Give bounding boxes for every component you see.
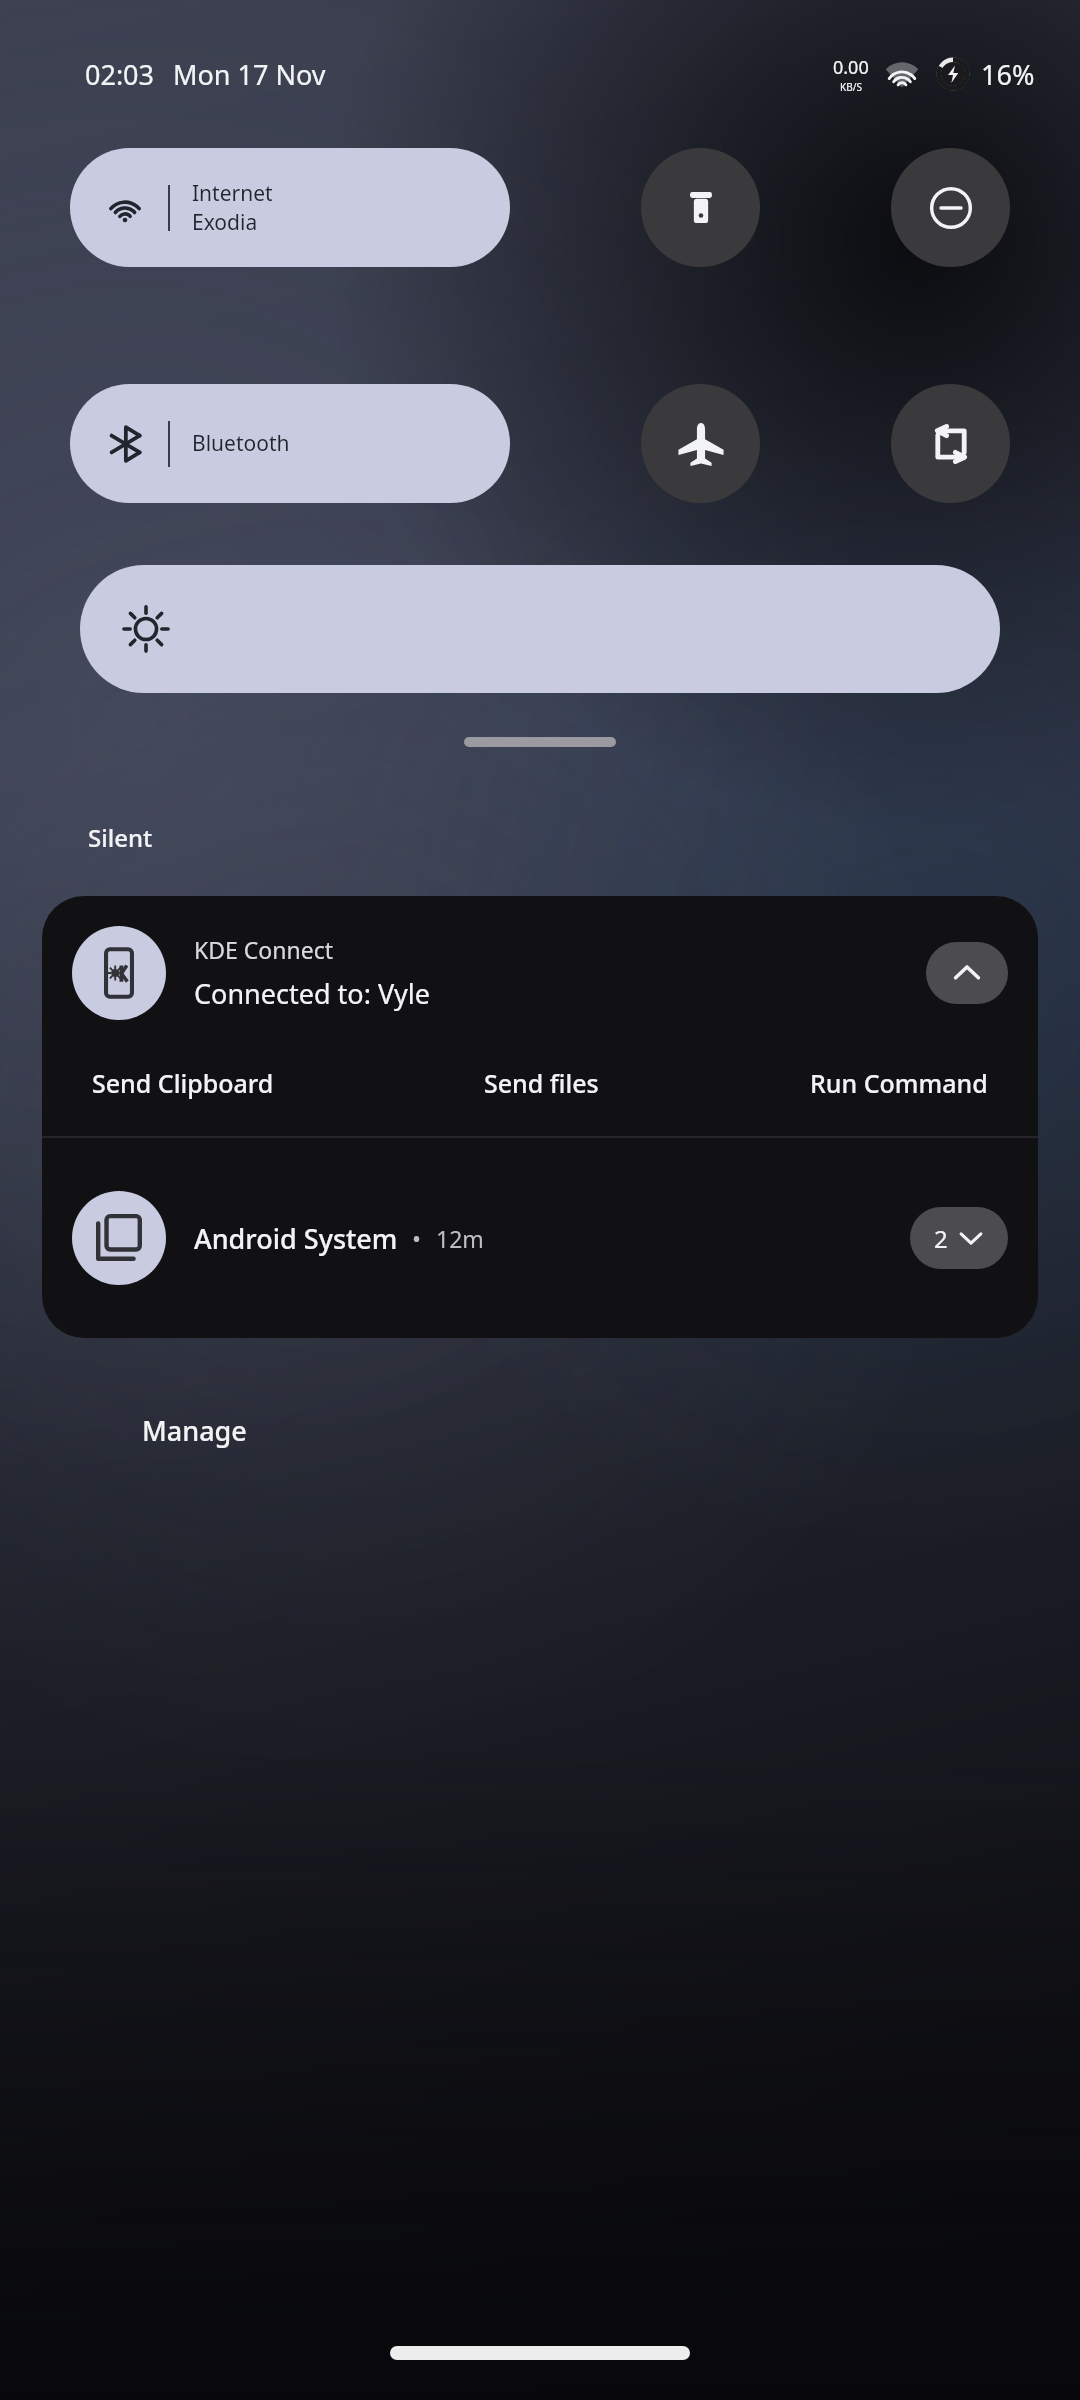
staticText: Run Command [810, 1066, 988, 1100]
staticText: Mon 17 Nov [173, 56, 326, 93]
button[interactable]: Internet [70, 148, 510, 267]
button[interactable]: Run Command [794, 1056, 1004, 1110]
staticText: 2 [934, 1222, 948, 1255]
staticText: Silent [88, 821, 153, 854]
staticText: Connected to: Vyle [194, 975, 431, 1012]
staticText: Android System [194, 1220, 398, 1257]
button[interactable]: Manage [124, 1400, 265, 1461]
staticText: 0.00 [833, 55, 869, 80]
staticText: Exodia [192, 208, 258, 237]
staticText: Internet [192, 179, 273, 208]
staticText: Send Clipboard [92, 1066, 274, 1100]
staticText: Bluetooth [192, 429, 290, 458]
button[interactable]: Send Clipboard [76, 1056, 290, 1110]
button[interactable]: Brightness [80, 565, 1000, 693]
staticText: 02:03 [85, 56, 155, 93]
staticText: Send files [484, 1066, 599, 1100]
button[interactable]: Flashlight [641, 148, 760, 267]
staticText: KB/S [840, 80, 862, 94]
button[interactable]: Do Not Disturb [891, 148, 1010, 267]
staticText: 12m [436, 1223, 484, 1254]
button[interactable]: Android System [42, 1138, 1038, 1338]
staticText: 16% [981, 56, 1035, 93]
button[interactable]: Bluetooth [70, 384, 510, 503]
button[interactable]: Expand 2 notifications [910, 1207, 1008, 1269]
staticText: Manage [142, 1412, 247, 1449]
button[interactable]: Airplane mode [641, 384, 760, 503]
button[interactable]: KDE Connect [42, 896, 1038, 1136]
button[interactable]: Send files [468, 1056, 615, 1110]
staticText: • [412, 1222, 422, 1255]
button[interactable]: Collapse notification [926, 942, 1008, 1004]
button[interactable]: Expand quick settings [464, 737, 616, 747]
button[interactable]: Auto rotate [891, 384, 1010, 503]
staticText: KDE Connect [194, 934, 333, 965]
